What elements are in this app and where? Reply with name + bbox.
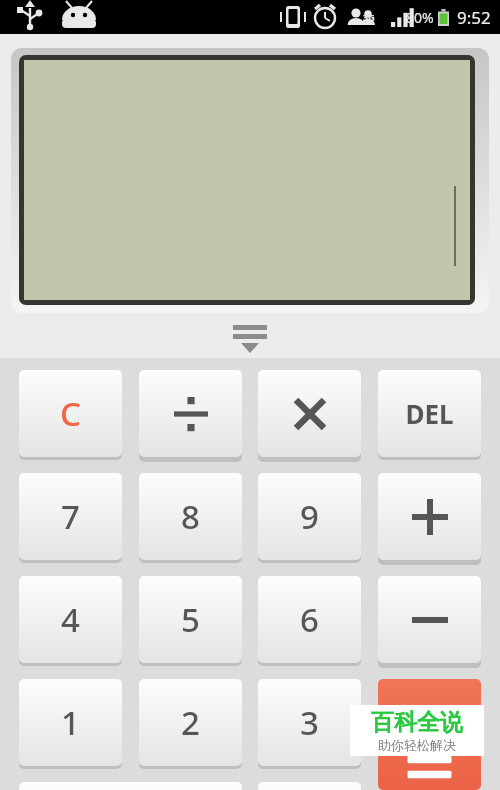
button[interactable]: 8 bbox=[139, 473, 242, 560]
button[interactable]: 2 bbox=[139, 679, 242, 766]
button[interactable]: . bbox=[258, 782, 361, 790]
button[interactable]: Divide bbox=[139, 370, 242, 457]
staticText: 百科全说 bbox=[371, 708, 463, 737]
button[interactable]: 4 bbox=[19, 576, 122, 663]
staticText: 6 bbox=[300, 597, 319, 642]
button[interactable]: DEL bbox=[378, 370, 481, 457]
button[interactable]: 3 bbox=[258, 679, 361, 766]
staticText: 1 bbox=[61, 700, 80, 745]
staticText: 8 bbox=[181, 494, 200, 539]
staticText: 9 bbox=[300, 494, 319, 539]
staticText: 2 bbox=[181, 700, 200, 745]
button[interactable]: 1 bbox=[19, 679, 122, 766]
staticText: 5 bbox=[181, 597, 200, 642]
button[interactable]: 5 bbox=[139, 576, 242, 663]
button[interactable]: Minus bbox=[378, 576, 481, 663]
staticText: C bbox=[60, 391, 81, 436]
button[interactable]: Equals bbox=[378, 679, 481, 790]
staticText: 9:52 bbox=[457, 6, 491, 29]
button[interactable]: Plus bbox=[378, 473, 481, 560]
staticText: 7 bbox=[61, 494, 80, 539]
button[interactable]: 6 bbox=[258, 576, 361, 663]
staticText: 4 bbox=[61, 597, 80, 642]
staticText: 80% bbox=[406, 8, 434, 27]
staticText: 助你轻松解决 bbox=[378, 737, 456, 753]
staticText: DEL bbox=[405, 396, 454, 431]
button[interactable]: C bbox=[19, 370, 122, 457]
staticText: 3 bbox=[300, 700, 319, 745]
button[interactable]: 9 bbox=[258, 473, 361, 560]
staticText: 3G bbox=[363, 11, 375, 23]
button[interactable]: Show history bbox=[226, 323, 274, 351]
button[interactable]: 7 bbox=[19, 473, 122, 560]
button[interactable]: Multiply bbox=[258, 370, 361, 457]
